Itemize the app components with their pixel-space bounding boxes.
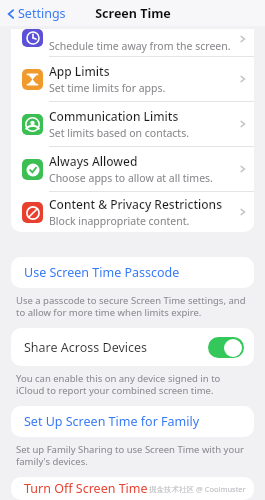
staticText: Set Up Screen Time for Family — [24, 413, 200, 430]
staticText: Use a passcode to secure Screen Time set… — [16, 294, 247, 319]
button[interactable]: Schedule time away from the screen. — [16, 29, 246, 56]
button[interactable]: Content & Privacy Restrictions — [11, 192, 254, 232]
button[interactable]: Share Across Devices — [11, 328, 254, 366]
staticText: Share Across Devices — [24, 339, 148, 356]
staticText: You can enable this on any device signed… — [16, 372, 247, 397]
staticText: Set time limits for apps. — [49, 81, 166, 95]
staticText: Settings — [18, 5, 66, 22]
staticText: 掘金技术社区 @ Coolmuster — [149, 484, 246, 494]
button[interactable]: Turn Off Screen Time — [11, 477, 254, 500]
button[interactable]: App Limits — [11, 57, 254, 101]
staticText: App Limits — [49, 63, 110, 79]
staticText: Set up Family Sharing to use Screen Time… — [16, 443, 247, 468]
button[interactable]: Use Screen Time Passcode — [11, 257, 254, 288]
staticText: Communication Limits — [49, 108, 179, 124]
button[interactable]: Set Up Screen Time for Family — [11, 406, 254, 437]
staticText: Turn Off Screen Time — [24, 480, 148, 497]
staticText: Schedule time away from the screen. — [49, 39, 231, 53]
staticText: Always Allowed — [49, 153, 138, 169]
button[interactable]: Communication Limits — [11, 102, 254, 146]
button[interactable]: Always Allowed — [11, 147, 254, 191]
staticText: Use Screen Time Passcode — [24, 264, 180, 281]
button[interactable]: Share Across Devices toggle, on — [208, 337, 244, 358]
button[interactable]: Settings — [6, 5, 66, 22]
staticText: Content & Privacy Restrictions — [49, 196, 222, 212]
staticText: Screen Time — [95, 5, 171, 22]
staticText: Set limits based on contacts. — [49, 126, 189, 140]
staticText: Choose apps to allow at all times. — [49, 171, 213, 185]
staticText: Block inappropriate content. — [49, 214, 190, 228]
